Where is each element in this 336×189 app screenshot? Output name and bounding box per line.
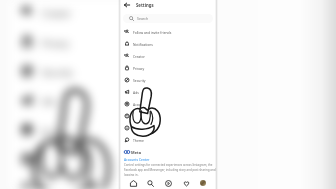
staticText: Ads: [42, 95, 56, 108]
staticText: Security: [42, 66, 74, 78]
button[interactable]: Back: [120, 0, 216, 10]
button[interactable]: Ads: [120, 86, 216, 98]
button[interactable]: Privacy: [120, 62, 216, 74]
staticText: Settings: [136, 2, 154, 8]
staticText: Privacy: [133, 66, 145, 71]
staticText: Notifications: [133, 42, 153, 47]
button[interactable]: Theme: [120, 134, 216, 146]
button[interactable]: Search: [123, 14, 213, 23]
staticText: Control settings for connected experienc…: [124, 163, 220, 177]
staticText: Ads: [133, 90, 139, 95]
button[interactable]: Accounts Center: [124, 157, 150, 161]
button[interactable]: Creator: [10, 0, 245, 27]
staticText: Help: [42, 154, 61, 167]
button[interactable]: About: [120, 122, 216, 134]
button[interactable]: Security: [120, 74, 216, 86]
button[interactable]: Activity: [181, 178, 191, 188]
staticText: Account: [42, 125, 74, 137]
button[interactable]: Security: [10, 56, 245, 86]
staticText: Search: [137, 16, 149, 21]
staticText: Creator: [133, 54, 145, 59]
staticText: Account: [133, 102, 146, 107]
button[interactable]: Account: [120, 98, 216, 110]
staticText: Help: [133, 114, 141, 119]
button[interactable]: Home: [128, 178, 138, 188]
button[interactable]: Search: [145, 178, 155, 188]
button[interactable]: Help: [10, 144, 245, 174]
button[interactable]: Account: [10, 115, 245, 144]
staticText: Theme: [133, 138, 144, 143]
button[interactable]: Profile: [198, 178, 208, 188]
staticText: Security: [133, 78, 146, 83]
button[interactable]: Ads: [10, 86, 245, 115]
staticText: About: [133, 126, 143, 131]
staticText: Meta: [131, 150, 142, 155]
other: Back: [123, 1, 131, 9]
staticText: Privacy: [42, 37, 71, 49]
staticText: Creator: [42, 7, 71, 20]
button[interactable]: Reels: [163, 178, 173, 188]
button[interactable]: Privacy: [10, 27, 245, 56]
staticText: About: [42, 184, 66, 189]
button[interactable]: About: [10, 174, 245, 189]
button[interactable]: Follow and invite friends: [120, 26, 216, 38]
button[interactable]: Creator: [120, 50, 216, 62]
button[interactable]: Notifications: [120, 38, 216, 50]
staticText: Follow and invite friends: [133, 30, 172, 35]
button[interactable]: Help: [120, 110, 216, 122]
